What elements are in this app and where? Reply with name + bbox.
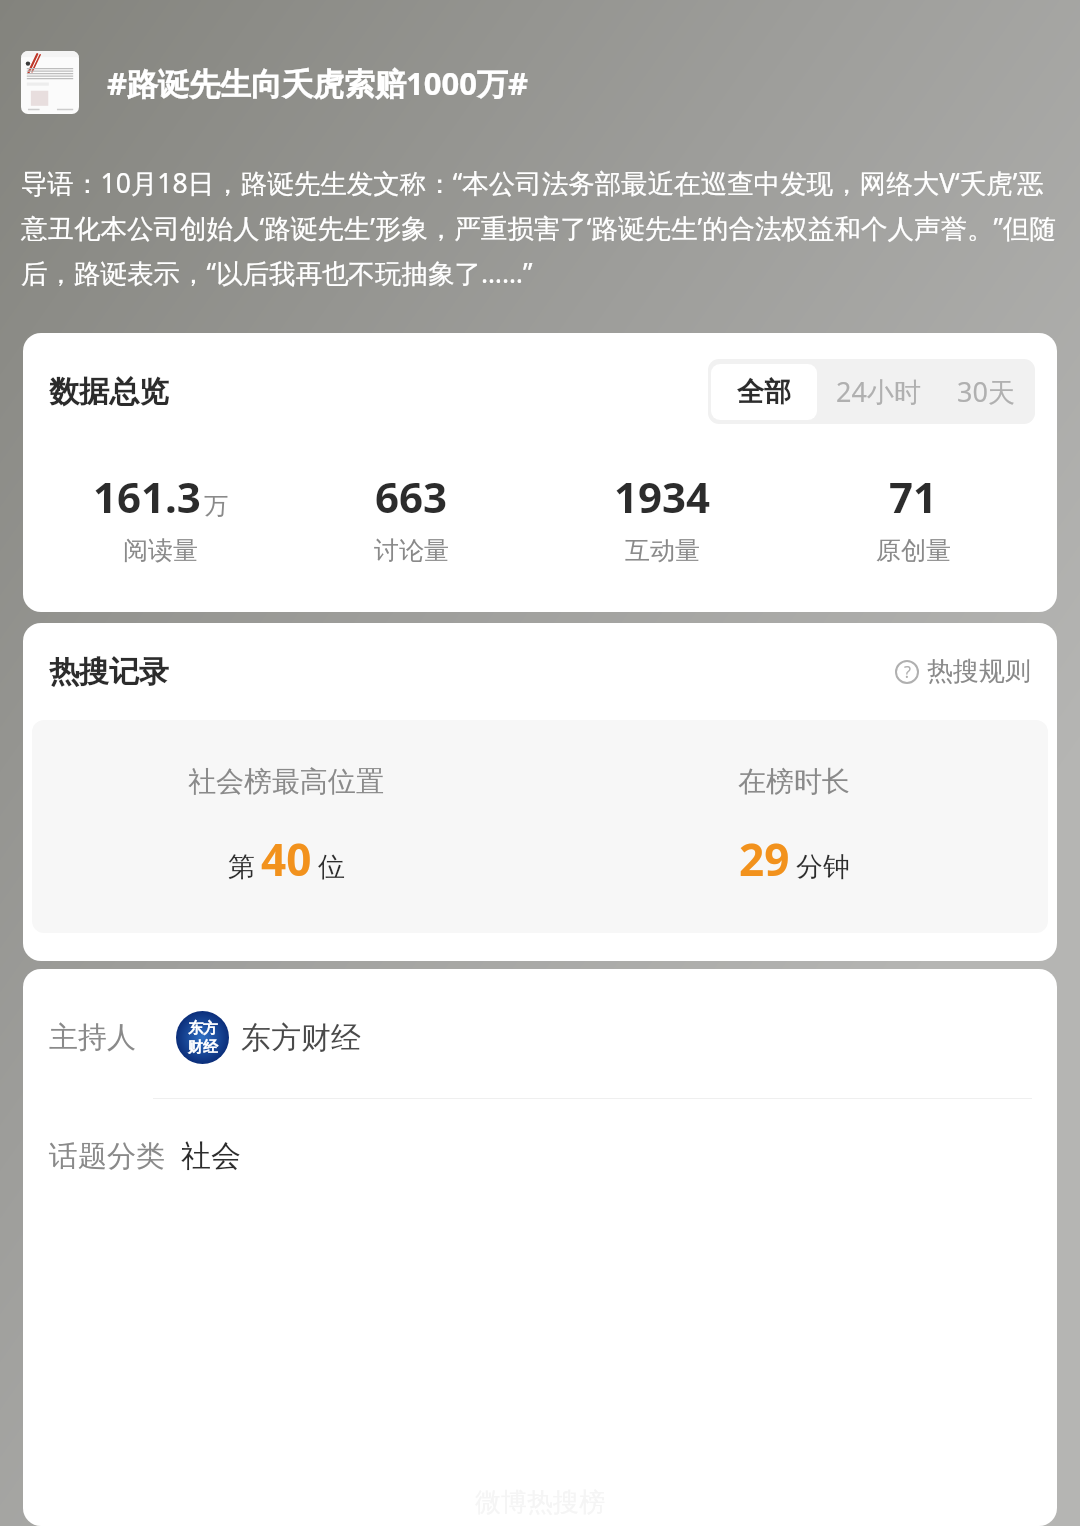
staticText: 71 — [889, 468, 938, 525]
staticText: 1934 — [614, 468, 711, 525]
staticText: 阅读量 — [123, 535, 198, 566]
staticText: 在榜时长 — [738, 764, 850, 799]
staticText: 热搜记录 — [49, 653, 169, 691]
staticText: 互动量 — [625, 535, 700, 566]
staticText: 导语：10月18日，路诞先生发文称：“本公司法务部最近在巡查中发现，网络大V‘夭… — [21, 165, 1060, 291]
staticText: 原创量 — [876, 535, 951, 566]
staticText: 161.3 — [93, 468, 201, 525]
button[interactable]: 热搜规则 — [891, 651, 1035, 692]
staticText: 30天 — [957, 373, 1015, 410]
staticText: 东方财经 — [241, 1019, 361, 1057]
staticText: 社会 — [181, 1137, 241, 1175]
button[interactable]: 全部 — [711, 364, 817, 420]
staticText: 位 — [318, 850, 345, 884]
staticText: 24小时 — [836, 373, 921, 410]
staticText: 663 — [375, 468, 448, 525]
staticText: 万 — [204, 491, 228, 521]
staticText: ? — [904, 661, 911, 683]
staticText: 财经 — [188, 1038, 218, 1057]
staticText: #路诞先生向夭虎索赔1000万# — [107, 62, 528, 104]
staticText: 微博热搜榜 — [475, 1486, 605, 1519]
other: 热搜规则 — [895, 660, 919, 684]
staticText: 社会榜最高位置 — [188, 764, 384, 799]
staticText: 主持人 — [49, 1019, 136, 1056]
button[interactable]: 东方 — [176, 1011, 361, 1064]
button[interactable]: 30天 — [940, 362, 1032, 421]
staticText: 东方 — [188, 1019, 218, 1038]
staticText: 29 — [739, 829, 790, 889]
staticText: 第 — [228, 850, 255, 884]
staticText: 全部 — [737, 375, 791, 409]
staticText: 数据总览 — [49, 373, 169, 411]
staticText: 分钟 — [796, 850, 850, 884]
staticText: 讨论量 — [374, 535, 449, 566]
staticText: 热搜规则 — [927, 655, 1031, 688]
staticText: 话题分类 — [49, 1138, 165, 1175]
button[interactable]: 24小时 — [817, 362, 940, 421]
staticText: 40 — [261, 829, 312, 889]
